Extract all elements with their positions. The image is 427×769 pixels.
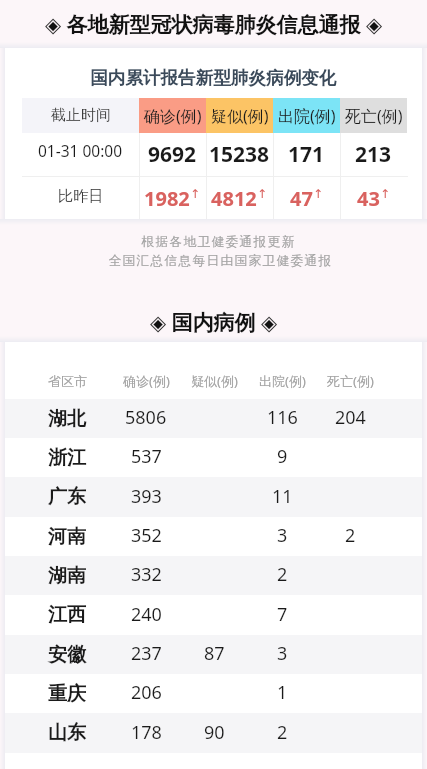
- staticText: 2: [345, 523, 356, 548]
- staticText: 1982: [144, 185, 190, 212]
- staticText: 确诊(例): [123, 372, 170, 390]
- staticText: 重庆: [48, 682, 86, 706]
- button[interactable]: 山东: [5, 713, 422, 753]
- staticText: 4812: [211, 185, 257, 212]
- staticText: 疑似(例): [191, 372, 238, 390]
- staticText: 90: [204, 720, 225, 745]
- staticText: 213: [355, 140, 392, 169]
- button[interactable]: 广东: [5, 477, 422, 517]
- staticText: 15238: [209, 140, 270, 169]
- staticText: 87: [204, 641, 225, 666]
- staticText: 9: [277, 444, 288, 469]
- staticText: 01-31 00:00: [38, 140, 123, 161]
- button[interactable]: 重庆: [5, 674, 422, 713]
- staticText: 5806: [125, 405, 167, 430]
- staticText: 截止时间: [51, 106, 111, 125]
- staticText: 出院(例): [278, 105, 336, 127]
- staticText: 省区市: [48, 373, 87, 389]
- staticText: 河南: [48, 525, 86, 549]
- staticText: 206: [131, 680, 162, 705]
- staticText: 3: [277, 641, 288, 666]
- staticText: ◈ 国内病例 ◈: [150, 308, 278, 336]
- staticText: 332: [131, 562, 162, 587]
- staticText: 240: [131, 602, 162, 627]
- staticText: 出院(例): [259, 372, 306, 390]
- button[interactable]: 截止时间: [22, 98, 139, 133]
- button[interactable]: 浙江: [5, 438, 422, 477]
- button[interactable]: 河南: [5, 517, 422, 556]
- staticText: 2: [277, 720, 288, 745]
- staticText: 江西: [48, 603, 86, 627]
- staticText: 疑似(例): [211, 105, 269, 127]
- button[interactable]: 安徽: [5, 635, 422, 674]
- staticText: 204: [335, 405, 366, 430]
- staticText: ↑: [190, 187, 201, 201]
- staticText: 171: [288, 140, 325, 169]
- button[interactable]: 死亡(例): [340, 98, 407, 133]
- staticText: 116: [267, 405, 298, 430]
- staticText: 7: [277, 602, 288, 627]
- staticText: 1: [277, 680, 288, 705]
- button[interactable]: 疑似(例): [206, 98, 273, 133]
- button[interactable]: ◈ 国内病例 ◈: [0, 300, 427, 336]
- staticText: 393: [131, 484, 162, 509]
- staticText: 确诊(例): [144, 105, 202, 127]
- button[interactable]: 湖南: [5, 556, 422, 595]
- staticText: 2: [277, 562, 288, 587]
- button[interactable]: ◈ 各地新型冠状病毒肺炎信息通报 ◈: [0, 0, 427, 42]
- staticText: 352: [131, 523, 162, 548]
- staticText: 国内累计报告新型肺炎病例变化: [90, 67, 337, 89]
- button[interactable]: 确诊(例): [139, 98, 206, 133]
- staticText: 9692: [148, 140, 197, 169]
- staticText: 浙江: [48, 446, 86, 470]
- staticText: 537: [131, 444, 162, 469]
- staticText: 178: [131, 720, 162, 745]
- staticText: 237: [131, 641, 162, 666]
- staticText: 根据各地卫健委通报更新: [10, 234, 427, 250]
- staticText: 47: [290, 185, 313, 212]
- staticText: 全国汇总信息每日由国家卫健委通报: [14, 253, 427, 269]
- staticText: 11: [272, 484, 293, 509]
- staticText: 湖北: [48, 407, 86, 431]
- staticText: 湖南: [48, 564, 86, 588]
- staticText: ↑: [380, 187, 391, 201]
- button[interactable]: 江西: [5, 595, 422, 635]
- staticText: 死亡(例): [345, 105, 403, 127]
- staticText: 安徽: [48, 643, 86, 667]
- staticText: ↑: [257, 187, 268, 201]
- staticText: 3: [277, 523, 288, 548]
- staticText: 死亡(例): [327, 372, 374, 390]
- staticText: 山东: [48, 721, 86, 745]
- button[interactable]: 出院(例): [273, 98, 340, 133]
- staticText: 广东: [48, 485, 86, 509]
- button[interactable]: 湖北: [5, 399, 422, 438]
- staticText: 比昨日: [58, 186, 104, 205]
- staticText: 43: [357, 185, 380, 212]
- staticText: ↑: [313, 187, 324, 201]
- staticText: ◈ 各地新型冠状病毒肺炎信息通报 ◈: [45, 10, 383, 39]
